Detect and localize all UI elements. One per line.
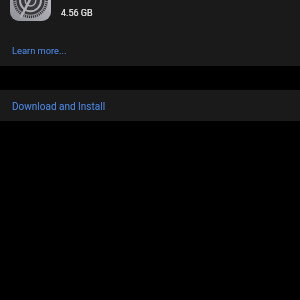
staticText: Download and Install xyxy=(12,101,106,113)
button[interactable]: Download and Install xyxy=(0,90,300,121)
other: System update package xyxy=(10,0,51,21)
staticText: Learn more... xyxy=(12,45,67,56)
button[interactable]: Learn more... xyxy=(4,40,59,51)
staticText: 4.56 GB xyxy=(61,8,93,19)
